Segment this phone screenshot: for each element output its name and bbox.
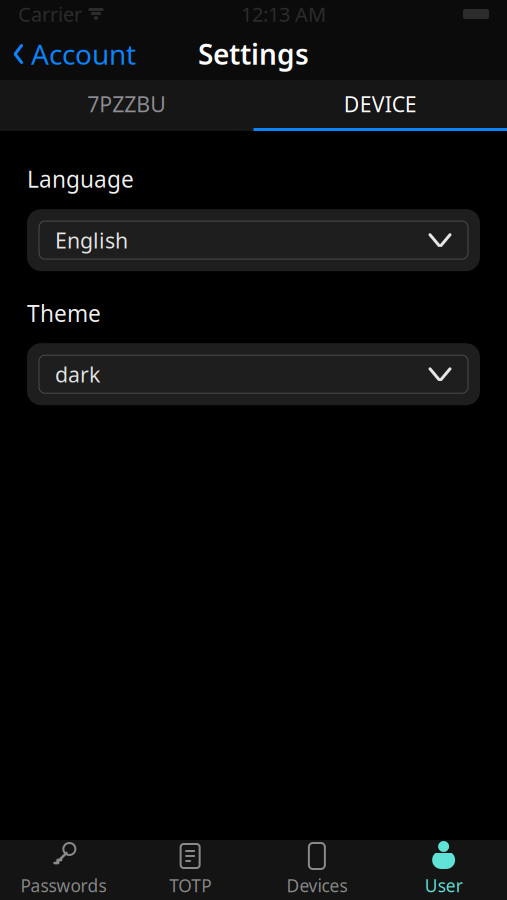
staticText: User [425, 874, 463, 897]
staticText: TOTP [169, 874, 211, 897]
staticText: Devices [286, 874, 347, 897]
button[interactable]: English [27, 209, 480, 271]
staticText: Account [31, 35, 136, 73]
staticText: Settings [198, 35, 309, 73]
staticText: 12:13 AM [241, 1, 326, 27]
button[interactable]: DEVICE [253, 80, 507, 128]
button[interactable]: Account [0, 29, 148, 79]
button[interactable]: dark [27, 343, 480, 405]
button[interactable]: TOTP [127, 840, 254, 900]
button[interactable]: Devices [253, 840, 380, 900]
staticText: English [55, 226, 128, 254]
staticText: 7PZZBU [87, 90, 166, 118]
staticText: dark [55, 360, 100, 388]
staticText: Carrier [18, 1, 82, 27]
staticText: Theme [27, 298, 101, 328]
button[interactable]: Passwords [0, 840, 127, 900]
button[interactable]: User [380, 840, 507, 900]
button[interactable]: 7PZZBU [0, 80, 253, 128]
staticText: Language [27, 164, 134, 194]
staticText: Passwords [20, 874, 106, 897]
staticText: DEVICE [344, 90, 417, 118]
